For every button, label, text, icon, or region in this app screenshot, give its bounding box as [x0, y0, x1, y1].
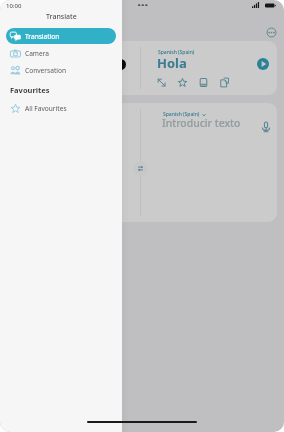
staticText: Favourites [10, 85, 50, 95]
button[interactable]: Dictionary [198, 77, 209, 88]
staticText: Translate [46, 12, 77, 22]
button[interactable]: Favourite [177, 77, 188, 88]
button[interactable]: Translation [6, 28, 116, 44]
staticText: Introducir texto [162, 116, 241, 130]
staticText: Translation [25, 32, 60, 41]
button[interactable]: Copy [219, 77, 230, 88]
staticText: Camera [25, 49, 50, 58]
button[interactable]: Back [115, 59, 126, 70]
button[interactable]: All Favourites [6, 100, 116, 116]
staticText: 10:00 [7, 3, 23, 11]
button[interactable]: Voice input [260, 121, 272, 133]
button[interactable]: Conversation [6, 62, 116, 78]
button[interactable]: Play [257, 58, 269, 70]
button[interactable]: Swap languages [133, 161, 148, 176]
staticText: All Favourites [25, 104, 67, 113]
staticText: Conversation [25, 66, 67, 75]
staticText: 10:00 [6, 2, 22, 10]
button[interactable]: More options [266, 27, 277, 38]
button[interactable]: Expand [156, 77, 167, 88]
staticText: Spanish (Spain) [158, 49, 195, 56]
staticText: Spanish (Spain) [163, 111, 200, 118]
button[interactable]: Camera [6, 45, 116, 61]
staticText: Hola [157, 54, 187, 72]
